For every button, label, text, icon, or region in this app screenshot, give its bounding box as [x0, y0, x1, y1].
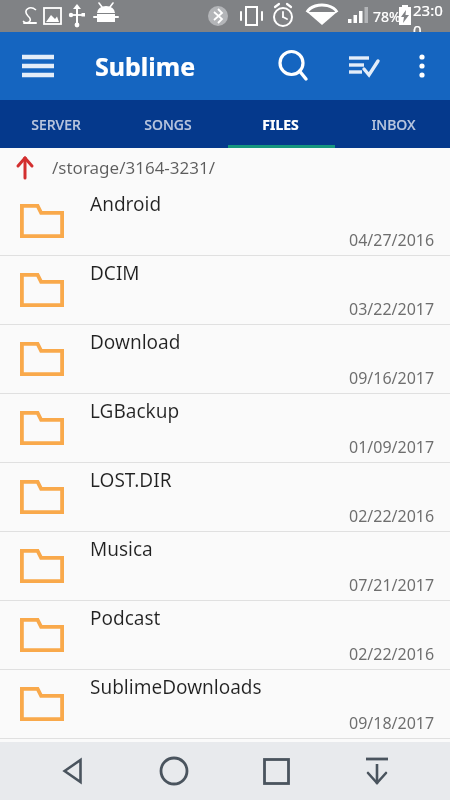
- button[interactable]: DCIM: [0, 256, 450, 325]
- staticText: FILES: [262, 115, 299, 134]
- staticText: SERVER: [31, 115, 81, 134]
- staticText: Sublime: [95, 49, 196, 83]
- button[interactable]: Musica: [0, 532, 450, 601]
- button[interactable]: FILES: [224, 100, 337, 148]
- button[interactable]: Home: [145, 742, 203, 800]
- staticText: LOST.DIR: [90, 467, 172, 493]
- staticText: DCIM: [90, 260, 140, 286]
- button[interactable]: SONGS: [112, 100, 224, 148]
- staticText: SublimeDownloads: [90, 674, 262, 700]
- button[interactable]: SERVER: [0, 100, 112, 148]
- staticText: LGBackup: [90, 398, 180, 424]
- button[interactable]: More options: [398, 42, 446, 90]
- staticText: 09/18/2017: [349, 712, 435, 734]
- staticText: Podcast: [90, 605, 161, 631]
- staticText: 01/09/2017: [349, 436, 435, 458]
- button[interactable]: LOST.DIR: [0, 463, 450, 532]
- staticText: Musica: [90, 536, 153, 562]
- button[interactable]: LGBackup: [0, 394, 450, 463]
- staticText: SONGS: [144, 115, 192, 134]
- staticText: 78%: [373, 7, 401, 26]
- button[interactable]: Recent apps: [247, 742, 305, 800]
- button[interactable]: INBOX: [337, 100, 450, 148]
- button[interactable]: Open navigation menu: [14, 42, 62, 90]
- staticText: Android: [90, 191, 162, 217]
- staticText: 07/21/2017: [349, 574, 435, 596]
- button[interactable]: Podcast: [0, 601, 450, 670]
- button[interactable]: Back: [44, 742, 102, 800]
- staticText: INBOX: [371, 115, 416, 134]
- staticText: 02/22/2016: [349, 505, 435, 527]
- staticText: /storage/3164-3231/: [52, 156, 216, 179]
- staticText: 04/27/2016: [349, 229, 435, 251]
- button[interactable]: Search: [268, 40, 320, 92]
- staticText: 02/22/2016: [349, 643, 435, 665]
- button[interactable]: Hide keyboard: [348, 742, 406, 800]
- button[interactable]: Download: [0, 325, 450, 394]
- staticText: 09/16/2017: [349, 367, 435, 389]
- button[interactable]: Android: [0, 187, 450, 256]
- button[interactable]: SublimeDownloads: [0, 670, 450, 739]
- button[interactable]: Select items: [337, 40, 389, 92]
- staticText: Download: [90, 329, 181, 355]
- staticText: 23:00: [413, 0, 450, 32]
- staticText: 03/22/2017: [349, 298, 435, 320]
